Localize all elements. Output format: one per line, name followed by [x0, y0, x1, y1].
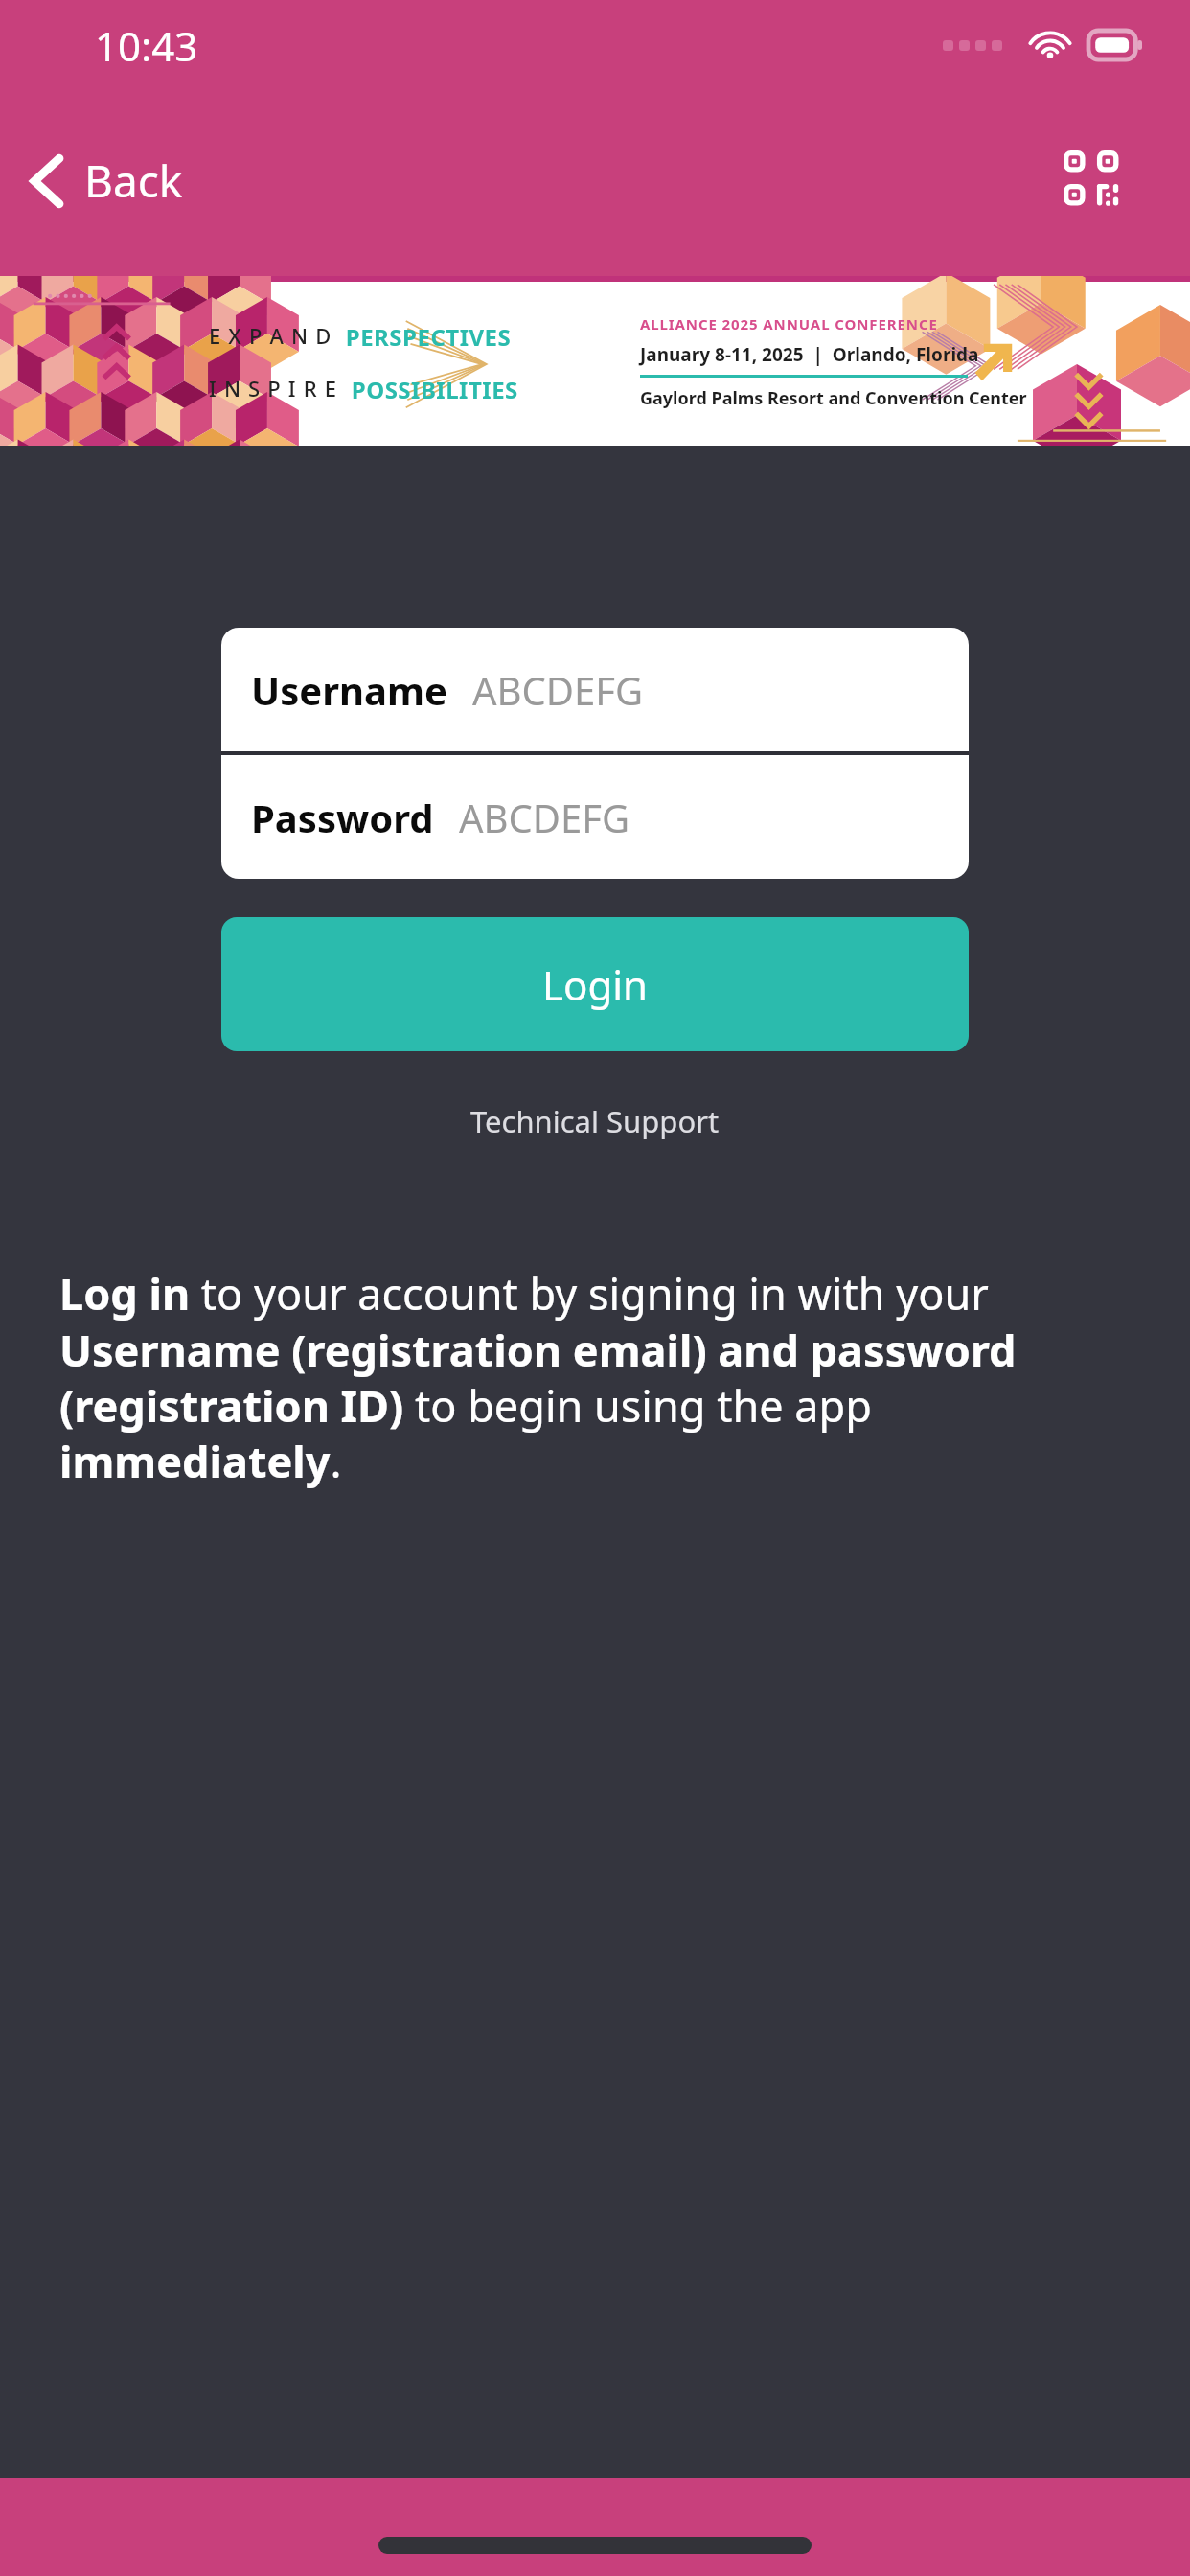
button[interactable]: Username [221, 628, 969, 751]
staticText: January 8-11, 2025 | Orlando, Florida [640, 342, 979, 367]
button[interactable]: Scan QR code [1056, 143, 1131, 218]
staticText: 10:43 [95, 18, 198, 73]
staticText: Username [251, 664, 447, 716]
staticText: Gaylord Palms Resort and Convention Cent… [640, 386, 1027, 410]
button[interactable]: Login [221, 917, 969, 1051]
staticText: ABCDEFG [459, 792, 630, 843]
button[interactable]: Password [221, 755, 969, 879]
staticText: E X P A N D [209, 321, 339, 350]
button[interactable]: Back [19, 137, 195, 224]
staticText: ALLIANCE 2025 ANNUAL CONFERENCE [640, 314, 938, 333]
button[interactable]: Technical Support [451, 1092, 739, 1151]
staticText: Log in to your account by signing in wit… [59, 1264, 1131, 1490]
staticText: Back [84, 150, 183, 211]
staticText: Login [542, 957, 649, 1012]
staticText: Password [251, 792, 434, 843]
staticText: I N S P I R E [209, 374, 345, 402]
staticText: PERSPECTIVES [339, 321, 512, 353]
staticText: ABCDEFG [472, 664, 644, 716]
staticText: POSSIBILITIES [345, 374, 518, 405]
